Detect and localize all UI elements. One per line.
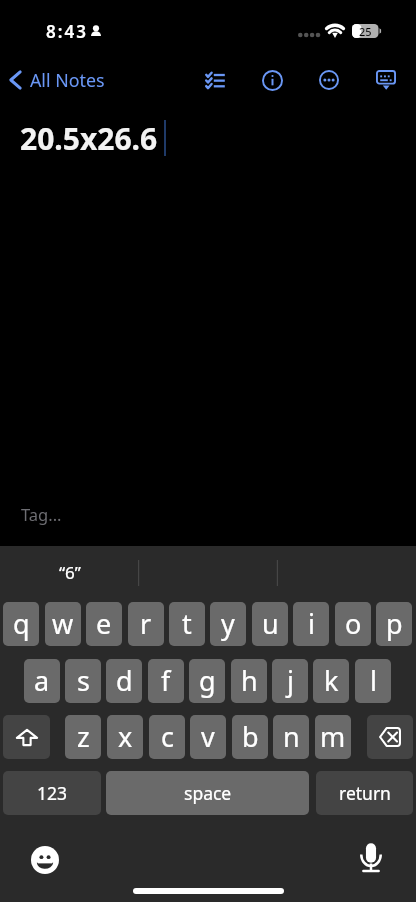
staticText: z bbox=[77, 718, 90, 755]
button[interactable]: g bbox=[189, 659, 225, 703]
button[interactable]: return bbox=[316, 771, 413, 815]
staticText: c bbox=[161, 718, 174, 755]
button[interactable]: o bbox=[335, 602, 371, 646]
staticText: t bbox=[182, 605, 192, 642]
button[interactable]: w bbox=[45, 602, 81, 646]
button[interactable]: f bbox=[148, 659, 184, 703]
staticText: k bbox=[324, 662, 339, 699]
staticText: y bbox=[221, 605, 235, 642]
button[interactable]: n bbox=[273, 715, 309, 759]
staticText: return bbox=[339, 781, 391, 805]
button[interactable]: j bbox=[272, 659, 308, 703]
staticText: 20.5x26.6 bbox=[20, 118, 158, 159]
staticText: h bbox=[241, 662, 258, 699]
staticText: g bbox=[199, 662, 216, 699]
button[interactable]: a bbox=[24, 659, 60, 703]
button[interactable]: “6” bbox=[0, 546, 139, 602]
button[interactable]: Shift bbox=[3, 715, 50, 759]
button[interactable]: space bbox=[106, 771, 309, 815]
staticText: u bbox=[262, 605, 279, 642]
button[interactable]: e bbox=[86, 602, 122, 646]
button[interactable]: Note details bbox=[258, 62, 287, 98]
staticText: r bbox=[140, 605, 152, 642]
staticText: o bbox=[345, 605, 362, 642]
staticText: f bbox=[161, 662, 171, 699]
staticText: 123 bbox=[37, 781, 68, 805]
button[interactable]: v bbox=[190, 715, 226, 759]
staticText: j bbox=[287, 662, 294, 699]
button[interactable]: c bbox=[149, 715, 185, 759]
button[interactable]: More options bbox=[315, 62, 343, 98]
button[interactable]: t bbox=[169, 602, 205, 646]
button[interactable]: Dictate bbox=[353, 841, 389, 877]
button[interactable]: Emoji bbox=[26, 841, 63, 878]
staticText: b bbox=[242, 718, 259, 755]
button[interactable]: r bbox=[128, 602, 164, 646]
button[interactable]: 123 bbox=[3, 771, 101, 815]
staticText: d bbox=[116, 662, 133, 699]
button[interactable]: p bbox=[376, 602, 412, 646]
button[interactable]: z bbox=[65, 715, 101, 759]
button[interactable]: All Notes bbox=[5, 62, 111, 98]
staticText: q bbox=[13, 605, 30, 642]
staticText: l bbox=[370, 662, 377, 699]
button[interactable]: y bbox=[210, 602, 246, 646]
staticText: All Notes bbox=[30, 68, 105, 92]
button[interactable]: h bbox=[231, 659, 267, 703]
staticText: space bbox=[184, 781, 232, 805]
staticText: Tag... bbox=[21, 503, 62, 525]
button[interactable]: x bbox=[107, 715, 143, 759]
button[interactable]: Backspace bbox=[367, 715, 413, 759]
button[interactable]: i bbox=[293, 602, 329, 646]
button[interactable]: b bbox=[232, 715, 268, 759]
button[interactable]: d bbox=[106, 659, 142, 703]
staticText: n bbox=[283, 718, 300, 755]
staticText: v bbox=[201, 718, 215, 755]
staticText: “6” bbox=[59, 561, 81, 584]
staticText: i bbox=[308, 605, 315, 642]
button[interactable]: u bbox=[252, 602, 288, 646]
staticText: w bbox=[52, 605, 74, 642]
staticText: p bbox=[386, 605, 403, 642]
button[interactable]: m bbox=[315, 715, 351, 759]
staticText: 8:43 bbox=[46, 20, 88, 43]
button[interactable]: q bbox=[3, 602, 39, 646]
staticText: a bbox=[34, 662, 50, 699]
button[interactable]: Hide keyboard bbox=[372, 62, 400, 98]
staticText: e bbox=[96, 605, 112, 642]
button[interactable]: l bbox=[355, 659, 391, 703]
staticText: m bbox=[320, 718, 346, 755]
button[interactable]: Checklist bbox=[201, 62, 229, 98]
button[interactable]: s bbox=[65, 659, 101, 703]
staticText: x bbox=[118, 718, 133, 755]
staticText: s bbox=[77, 662, 90, 699]
staticText: 25 bbox=[359, 24, 372, 38]
button[interactable]: k bbox=[313, 659, 349, 703]
